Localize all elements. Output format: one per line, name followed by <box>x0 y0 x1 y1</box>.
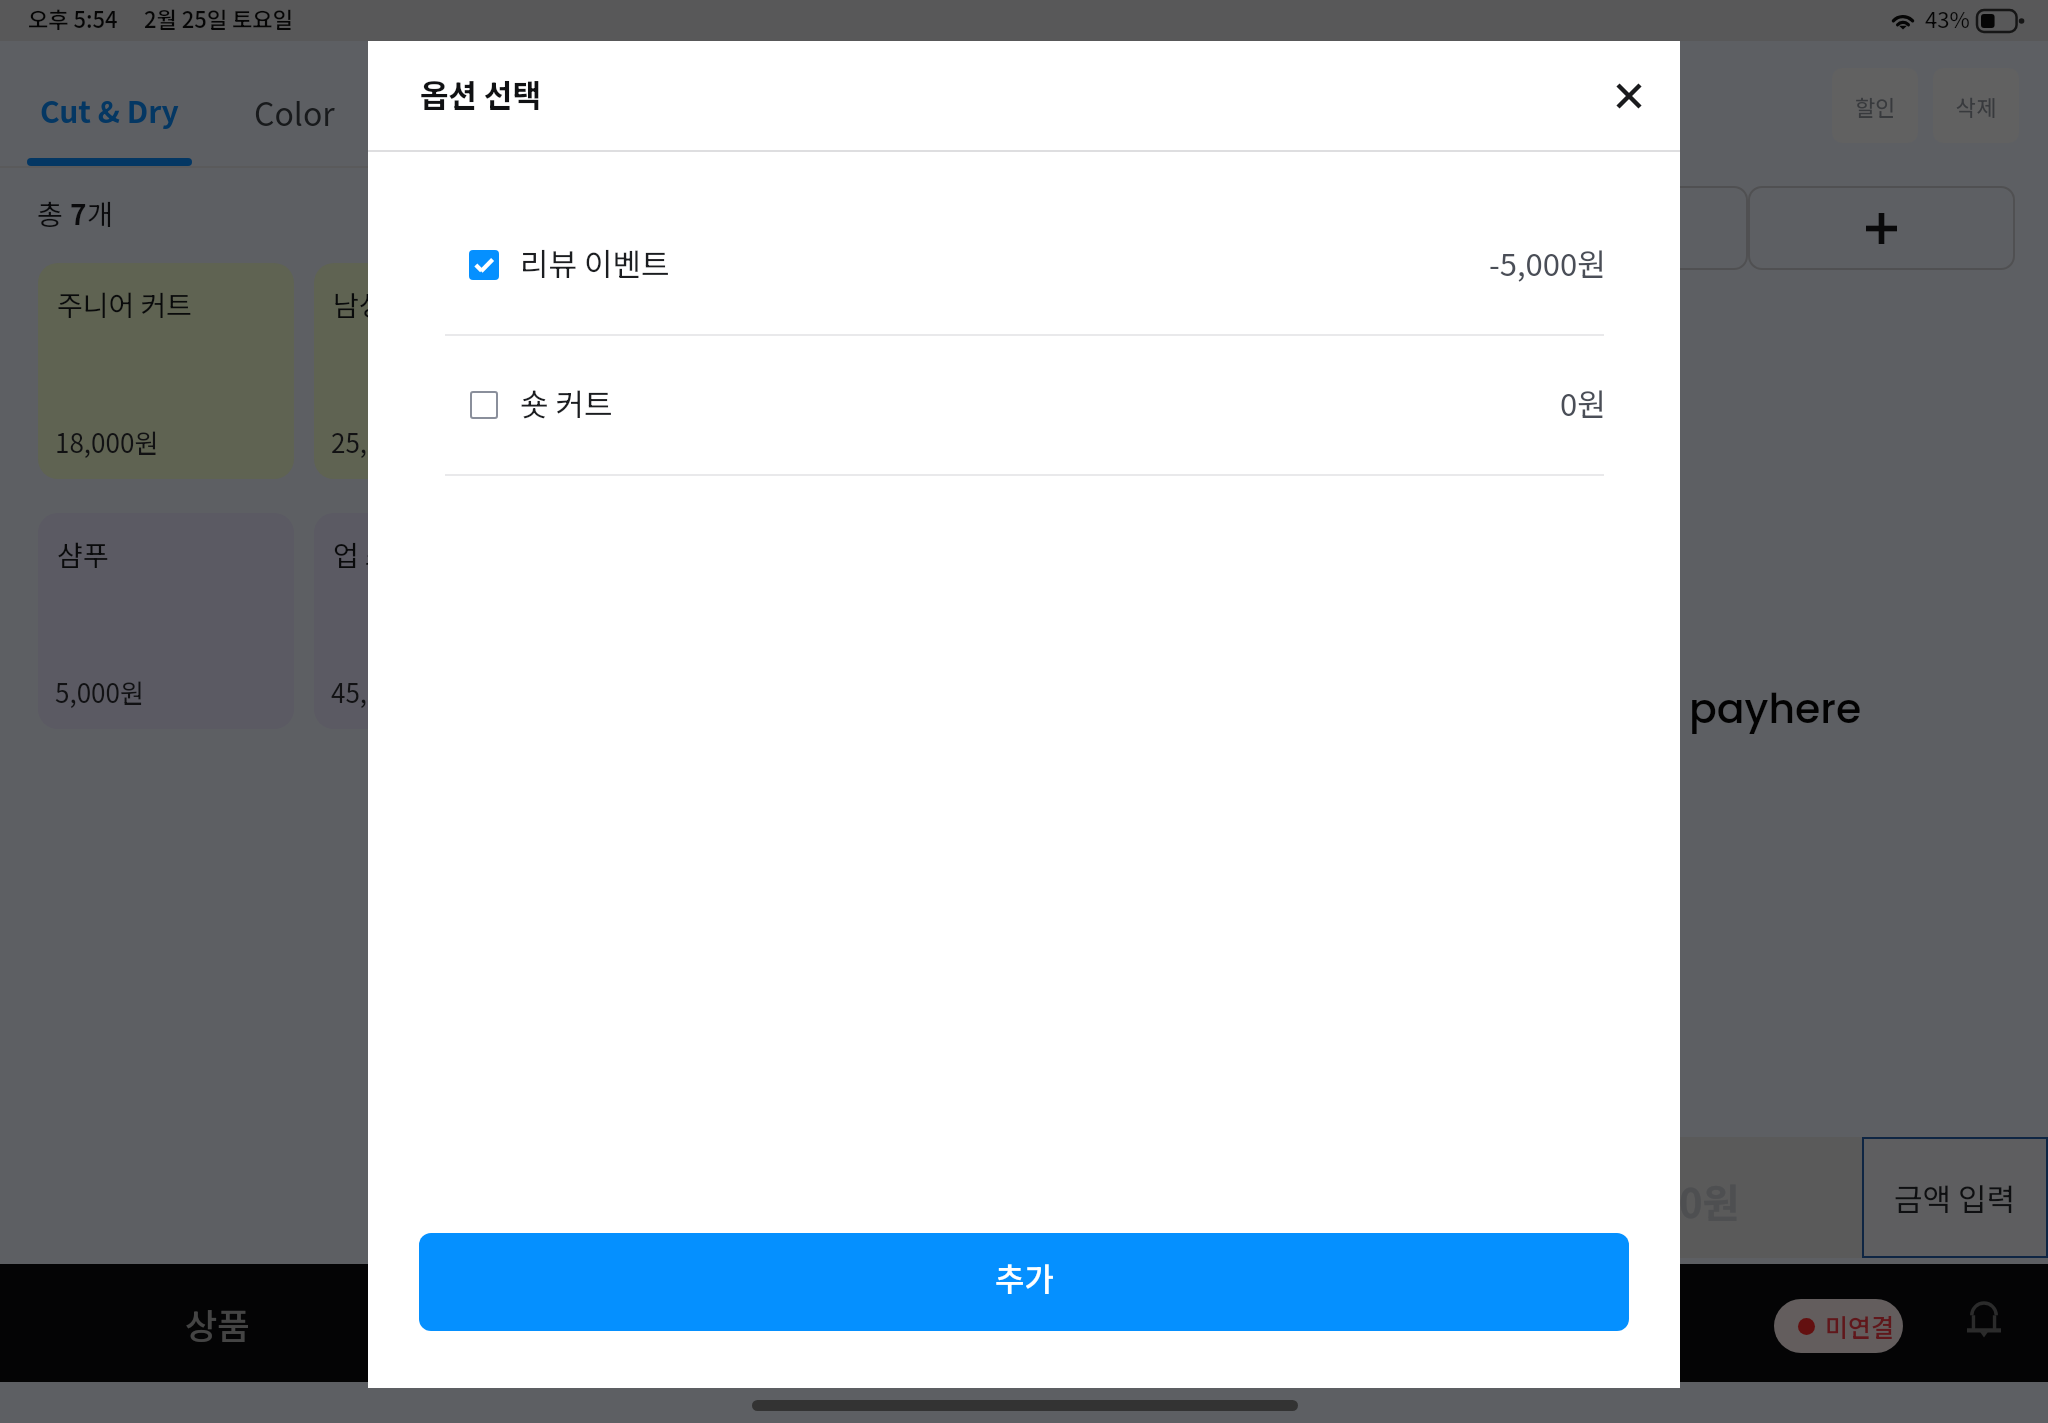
staticText: 0원 <box>1679 1172 1740 1230</box>
button[interactable]: 추가 <box>419 1233 1629 1331</box>
staticText: -5,000원 <box>1489 240 1606 285</box>
staticText: 샴푸 <box>57 534 109 575</box>
staticText: 추가 <box>995 1254 1054 1300</box>
button[interactable]: 업 스타일 <box>314 513 570 729</box>
staticText: 업 스타일 <box>333 534 443 575</box>
button[interactable]: 미연결 <box>1774 1299 1903 1353</box>
staticText: 미연결 <box>1825 1308 1895 1344</box>
button[interactable]: 상품 <box>0 1264 434 1382</box>
staticText: 45,000원 <box>331 673 435 711</box>
button[interactable]: 할인 <box>1832 68 1918 143</box>
staticText: 삭제 <box>1956 90 1997 122</box>
staticText: 7 <box>70 193 87 234</box>
staticText: 오후 5:54 <box>28 2 118 34</box>
button[interactable]: 샴푸 <box>38 513 294 729</box>
button[interactable]: Add item <box>1748 186 2015 270</box>
staticText: 5,000원 <box>55 673 144 711</box>
staticText: Cut & Dry <box>40 88 179 131</box>
staticText: 2월 25일 토요일 <box>144 2 293 34</box>
staticText: 개 <box>87 193 113 234</box>
staticText: 남성 커트 <box>333 284 443 325</box>
staticText: 주니어 커트 <box>57 284 193 325</box>
staticText: payhere <box>1689 680 1862 737</box>
button[interactable]: Color <box>226 41 362 166</box>
staticText: 25,000원 <box>331 423 435 461</box>
button[interactable]: Perm <box>418 41 554 166</box>
button[interactable]: 여성 커트 <box>590 263 846 479</box>
button[interactable]: Notifications <box>1953 1290 2015 1352</box>
button[interactable]: Cut & Dry <box>27 41 192 166</box>
button[interactable]: 리뷰 이벤트 <box>368 196 1680 336</box>
staticText: 리뷰 이벤트 <box>520 240 670 285</box>
button[interactable]: Close <box>1597 64 1661 128</box>
staticText: 총 <box>37 193 70 234</box>
staticText: 0원 <box>1560 380 1606 425</box>
staticText: 18,000원 <box>55 423 159 461</box>
staticText: 43% <box>1925 2 1970 34</box>
staticText: 옵션 선택 <box>420 71 542 116</box>
staticText: 숏 커트 <box>520 380 613 425</box>
staticText: 할인 <box>1855 90 1896 122</box>
staticText: Perm <box>445 89 525 135</box>
staticText: 금액 입력 <box>1894 1175 2016 1220</box>
staticText: Color <box>254 89 335 135</box>
button[interactable]: 삭제 <box>1933 68 2019 143</box>
staticText: 상품 <box>185 1298 250 1349</box>
button[interactable]: 금액 입력 <box>1862 1137 2048 1258</box>
button[interactable]: 남성 커트 <box>314 263 570 479</box>
button[interactable]: 숏 커트 <box>368 336 1680 476</box>
button[interactable]: 주니어 커트 <box>38 263 294 479</box>
